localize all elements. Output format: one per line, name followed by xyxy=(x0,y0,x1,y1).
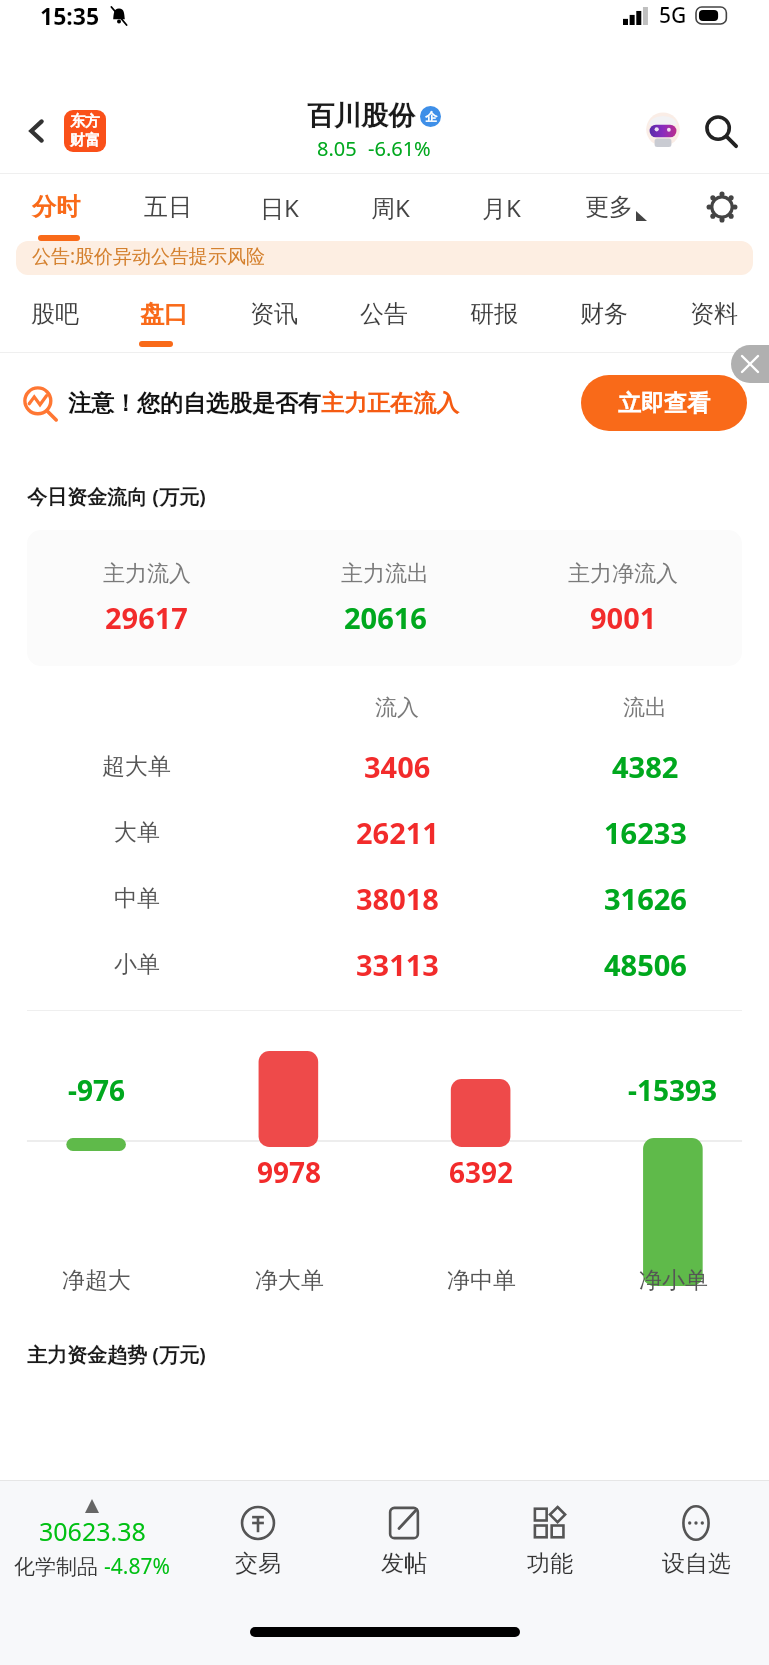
button[interactable]: 财务 xyxy=(549,275,659,353)
staticText: 15:35 xyxy=(40,0,100,31)
button[interactable]: 东方财富 xyxy=(64,110,106,152)
staticText: 29617 xyxy=(105,598,188,637)
staticText: 公告:股价异动公告提示风险 xyxy=(32,243,266,269)
staticText: -15393 xyxy=(628,1071,718,1109)
staticText: 净小单 xyxy=(639,1266,708,1295)
staticText: 发帖 xyxy=(381,1549,427,1578)
button[interactable]: 日K xyxy=(224,173,335,241)
button[interactable]: 公告:股价异动公告提示风险 xyxy=(16,241,753,275)
button[interactable]: 超大单 xyxy=(0,744,769,788)
button[interactable]: 五日 xyxy=(112,173,224,241)
staticText: 净超大 xyxy=(62,1266,131,1295)
button[interactable]: 小单 xyxy=(0,942,769,986)
staticText: 大单 xyxy=(114,818,160,847)
staticText: 股吧 xyxy=(31,299,79,329)
staticText: 月K xyxy=(482,191,521,224)
staticText: 功能 xyxy=(527,1549,573,1578)
staticText: 流出 xyxy=(623,694,667,722)
staticText: 5G xyxy=(659,1,687,30)
button[interactable]: 公告 xyxy=(329,275,439,353)
staticText: 26211 xyxy=(356,813,439,852)
staticText: 6392 xyxy=(449,1153,514,1191)
staticText: 31626 xyxy=(604,879,687,918)
staticText: 资料 xyxy=(690,299,738,329)
staticText: 立即查看 xyxy=(618,389,710,418)
staticText: -4.87% xyxy=(104,1552,170,1581)
button[interactable]: 月K xyxy=(446,173,557,241)
button[interactable]: 交易 xyxy=(184,1481,331,1599)
staticText: 主力流入 xyxy=(103,560,191,588)
button[interactable]: 功能 xyxy=(477,1481,623,1599)
button[interactable]: 盘口 xyxy=(109,275,219,353)
staticText: 中单 xyxy=(114,884,160,913)
button[interactable]: 30623.38 xyxy=(0,1481,184,1599)
staticText: 资讯 xyxy=(250,299,298,329)
staticText: 主力正在流入 xyxy=(321,389,459,418)
button[interactable]: 更多 xyxy=(557,173,674,241)
staticText: 主力资金趋势 (万元) xyxy=(27,1341,206,1368)
button[interactable]: 发帖 xyxy=(331,1481,477,1599)
button[interactable]: 大单 xyxy=(0,810,769,854)
staticText: 注意！您的自选股是否有 xyxy=(68,389,321,418)
staticText: 盘口 xyxy=(140,299,188,329)
staticText: 研报 xyxy=(470,299,518,329)
staticText: 化学制品 xyxy=(14,1552,104,1581)
button[interactable]: Close xyxy=(731,345,769,383)
button[interactable]: 9978 xyxy=(193,1011,385,1311)
button[interactable]: 中单 xyxy=(0,876,769,920)
button[interactable]: 周K xyxy=(335,173,446,241)
staticText: 8.05 xyxy=(317,135,357,162)
staticText: 交易 xyxy=(235,1549,281,1578)
staticText: 净大单 xyxy=(255,1266,324,1295)
button[interactable]: -976 xyxy=(0,1011,193,1311)
button[interactable]: -15393 xyxy=(577,1011,769,1311)
staticText: 4382 xyxy=(612,747,679,786)
staticText: 48506 xyxy=(604,945,687,984)
staticText: 流入 xyxy=(375,694,419,722)
staticText: 更多 xyxy=(585,192,633,222)
staticText: 财富 xyxy=(70,131,100,150)
button[interactable]: 6392 xyxy=(385,1011,577,1311)
staticText: 净中单 xyxy=(447,1266,516,1295)
button[interactable]: 资讯 xyxy=(219,275,329,353)
staticText: 设自选 xyxy=(662,1549,731,1578)
staticText: 公告 xyxy=(360,299,408,329)
staticText: 9001 xyxy=(590,598,657,637)
button[interactable]: Search xyxy=(695,105,747,157)
staticText: 16233 xyxy=(604,813,687,852)
staticText: -976 xyxy=(68,1071,126,1109)
staticText: 3406 xyxy=(364,747,431,786)
button[interactable]: Back xyxy=(14,108,60,154)
staticText: 分时 xyxy=(32,192,80,222)
staticText: 33113 xyxy=(356,945,439,984)
staticText: 20616 xyxy=(344,598,427,637)
staticText: 小单 xyxy=(114,950,160,979)
staticText: 财务 xyxy=(580,299,628,329)
staticText: 主力净流入 xyxy=(568,560,678,588)
staticText: 超大单 xyxy=(102,752,171,781)
staticText: 日K xyxy=(260,191,299,224)
button[interactable]: Assistant xyxy=(637,105,689,157)
staticText: 五日 xyxy=(144,192,192,222)
button[interactable]: 立即查看 xyxy=(581,375,747,431)
staticText: 东方 xyxy=(70,112,100,131)
button[interactable]: 研报 xyxy=(439,275,549,353)
staticText: 9978 xyxy=(257,1153,322,1191)
staticText: -6.61% xyxy=(368,135,431,162)
button[interactable]: 分时 xyxy=(0,173,112,241)
button[interactable]: 主力流入 xyxy=(27,530,742,666)
button[interactable]: Settings xyxy=(674,173,769,241)
button[interactable]: 注意！您的自选股是否有 xyxy=(22,353,747,453)
button[interactable]: 股吧 xyxy=(0,275,109,353)
staticText: 今日资金流向 (万元) xyxy=(27,483,206,510)
staticText: 38018 xyxy=(356,879,439,918)
button[interactable]: 设自选 xyxy=(623,1481,769,1599)
staticText: 百川股份 xyxy=(307,99,415,133)
staticText: 主力流出 xyxy=(341,560,429,588)
staticText: 企 xyxy=(425,109,437,124)
staticText: 周K xyxy=(371,191,410,224)
button[interactable]: 资料 xyxy=(659,275,769,353)
staticText: 30623.38 xyxy=(39,1514,146,1548)
